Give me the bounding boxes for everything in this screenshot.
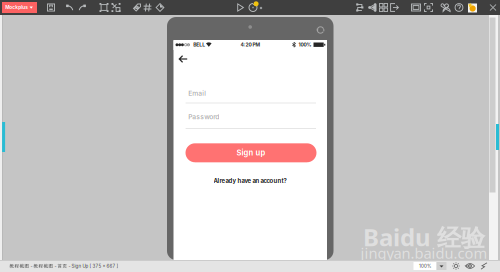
button[interactable]: Sign up <box>185 143 316 162</box>
button[interactable]: Help <box>452 0 466 14</box>
staticText: Sign up <box>236 148 265 157</box>
button[interactable]: Team <box>438 0 452 14</box>
button[interactable]: Preview <box>464 261 475 271</box>
button[interactable]: Pen tool <box>130 0 144 14</box>
button[interactable]: Sync <box>246 0 260 14</box>
button[interactable]: Full screen <box>421 0 435 14</box>
staticText: Already have an account? <box>213 177 286 184</box>
button[interactable]: Back <box>175 51 191 66</box>
button[interactable]: Close <box>486 0 500 14</box>
staticText: jingyan.baidu.com <box>360 243 487 263</box>
button[interactable]: Ungroup <box>109 0 123 14</box>
button[interactable]: Tools <box>479 261 489 271</box>
button[interactable]: Flow <box>353 0 367 14</box>
staticText: 100% <box>298 42 311 48</box>
button[interactable]: QR code <box>376 0 390 14</box>
button[interactable]: Already have an account? <box>200 177 300 185</box>
button[interactable]: Grid <box>140 0 154 14</box>
button[interactable]: Undo <box>63 0 77 14</box>
button[interactable]: Restore window <box>409 0 423 14</box>
button[interactable]: Fill colour <box>153 0 167 14</box>
staticText: Baidu 经验 <box>363 221 485 253</box>
staticText: 100% <box>419 263 431 269</box>
staticText: 4:20 PM <box>240 42 260 48</box>
button[interactable]: Save <box>44 0 58 14</box>
staticText: BELL <box>193 42 205 48</box>
staticText: Password <box>188 113 219 121</box>
button[interactable]: Brightness <box>451 261 461 271</box>
staticText: Mockplus <box>5 5 28 10</box>
button[interactable]: Export <box>387 0 401 14</box>
button[interactable]: Redo <box>75 0 89 14</box>
button[interactable]: Group <box>97 0 111 14</box>
button[interactable]: Share <box>365 0 379 14</box>
staticText: 教程截图 - 教程截图 - 首页 - Sign Up [ 375 × 667 ] <box>9 263 118 269</box>
button[interactable]: Rotate device <box>314 24 326 36</box>
button[interactable]: Preview <box>233 0 247 14</box>
staticText: Email <box>188 89 206 97</box>
button[interactable]: Mockplus <box>2 2 37 13</box>
button[interactable]: Upgrade <box>465 0 479 14</box>
